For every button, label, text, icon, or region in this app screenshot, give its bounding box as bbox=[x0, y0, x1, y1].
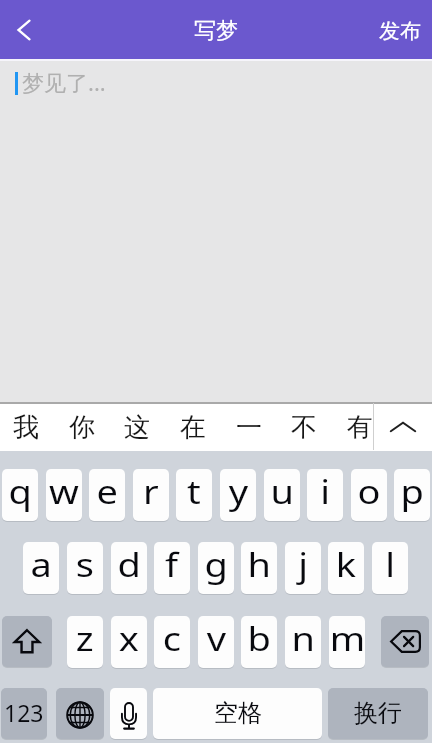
staticText: l bbox=[385, 542, 396, 587]
button[interactable]: 不 bbox=[276, 402, 332, 450]
button[interactable]: k bbox=[328, 542, 364, 594]
staticText: 空格 bbox=[214, 698, 262, 728]
staticText: 发布 bbox=[379, 18, 421, 44]
staticText: z bbox=[76, 616, 94, 661]
staticText: m bbox=[330, 616, 365, 661]
staticText: 有 bbox=[347, 411, 373, 444]
button[interactable]: 在 bbox=[165, 402, 221, 450]
button[interactable]: Enter bbox=[328, 688, 428, 739]
staticText: 梦见了... bbox=[22, 67, 106, 97]
staticText: w bbox=[49, 469, 79, 514]
button[interactable]: h bbox=[241, 542, 277, 594]
button[interactable]: Shift bbox=[2, 616, 52, 667]
button[interactable]: 一 bbox=[221, 402, 277, 450]
staticText: e bbox=[97, 469, 118, 514]
button[interactable]: w bbox=[46, 469, 82, 521]
staticText: 你 bbox=[69, 411, 95, 444]
button[interactable]: i bbox=[307, 469, 343, 521]
button[interactable]: Dream text editor bbox=[0, 61, 432, 402]
staticText: 一 bbox=[236, 411, 262, 444]
button[interactable]: o bbox=[351, 469, 387, 521]
staticText: g bbox=[204, 542, 228, 587]
button[interactable]: q bbox=[2, 469, 38, 521]
staticText: c bbox=[163, 616, 181, 661]
button[interactable]: b bbox=[241, 616, 277, 668]
button[interactable]: e bbox=[89, 469, 125, 521]
button[interactable]: Numbers bbox=[1, 688, 47, 739]
button[interactable]: z bbox=[67, 616, 103, 668]
staticText: p bbox=[400, 469, 425, 514]
staticText: 不 bbox=[291, 411, 317, 444]
button[interactable]: d bbox=[111, 542, 147, 594]
staticText: 写梦 bbox=[194, 17, 238, 45]
button[interactable]: Backspace bbox=[381, 616, 429, 667]
button[interactable]: y bbox=[220, 469, 256, 521]
staticText: y bbox=[229, 469, 248, 514]
staticText: r bbox=[143, 469, 159, 514]
button[interactable]: p bbox=[394, 469, 430, 521]
staticText: x bbox=[119, 616, 139, 661]
staticText: t bbox=[187, 469, 201, 514]
button[interactable]: j bbox=[285, 542, 321, 594]
button[interactable]: n bbox=[285, 616, 321, 668]
staticText: 123 bbox=[4, 697, 44, 728]
staticText: h bbox=[247, 542, 272, 587]
staticText: b bbox=[247, 616, 272, 661]
staticText: 这 bbox=[124, 411, 150, 444]
button[interactable]: Switch input language bbox=[56, 688, 104, 739]
staticText: k bbox=[336, 542, 356, 587]
staticText: j bbox=[298, 542, 309, 587]
button[interactable]: c bbox=[154, 616, 190, 668]
staticText: u bbox=[270, 469, 295, 514]
staticText: q bbox=[8, 469, 33, 514]
button[interactable]: t bbox=[176, 469, 212, 521]
button[interactable]: g bbox=[198, 542, 234, 594]
button[interactable]: 发布 bbox=[368, 7, 432, 53]
button[interactable]: v bbox=[198, 616, 234, 668]
staticText: o bbox=[357, 469, 380, 514]
button[interactable]: f bbox=[154, 542, 190, 594]
button[interactable]: Back bbox=[0, 6, 48, 54]
button[interactable]: s bbox=[67, 542, 103, 594]
button[interactable]: l bbox=[372, 542, 408, 594]
button[interactable]: Voice input bbox=[110, 688, 147, 739]
staticText: v bbox=[207, 616, 226, 661]
button[interactable]: 你 bbox=[54, 402, 110, 450]
staticText: a bbox=[31, 542, 52, 587]
button[interactable]: m bbox=[329, 616, 365, 668]
staticText: f bbox=[165, 542, 179, 587]
button[interactable]: 有 bbox=[332, 402, 388, 450]
button[interactable]: 我 bbox=[0, 402, 54, 450]
staticText: 换行 bbox=[354, 698, 402, 728]
staticText: s bbox=[76, 542, 94, 587]
button[interactable]: Space bbox=[153, 688, 322, 739]
button[interactable]: Expand candidates bbox=[374, 402, 432, 450]
button[interactable]: a bbox=[23, 542, 59, 594]
button[interactable]: r bbox=[133, 469, 169, 521]
staticText: 我 bbox=[13, 411, 39, 444]
button[interactable]: x bbox=[111, 616, 147, 668]
staticText: 在 bbox=[180, 411, 206, 444]
staticText: i bbox=[320, 469, 331, 514]
staticText: n bbox=[291, 616, 316, 661]
button[interactable]: 这 bbox=[109, 402, 165, 450]
staticText: d bbox=[117, 542, 141, 587]
button[interactable]: u bbox=[264, 469, 300, 521]
